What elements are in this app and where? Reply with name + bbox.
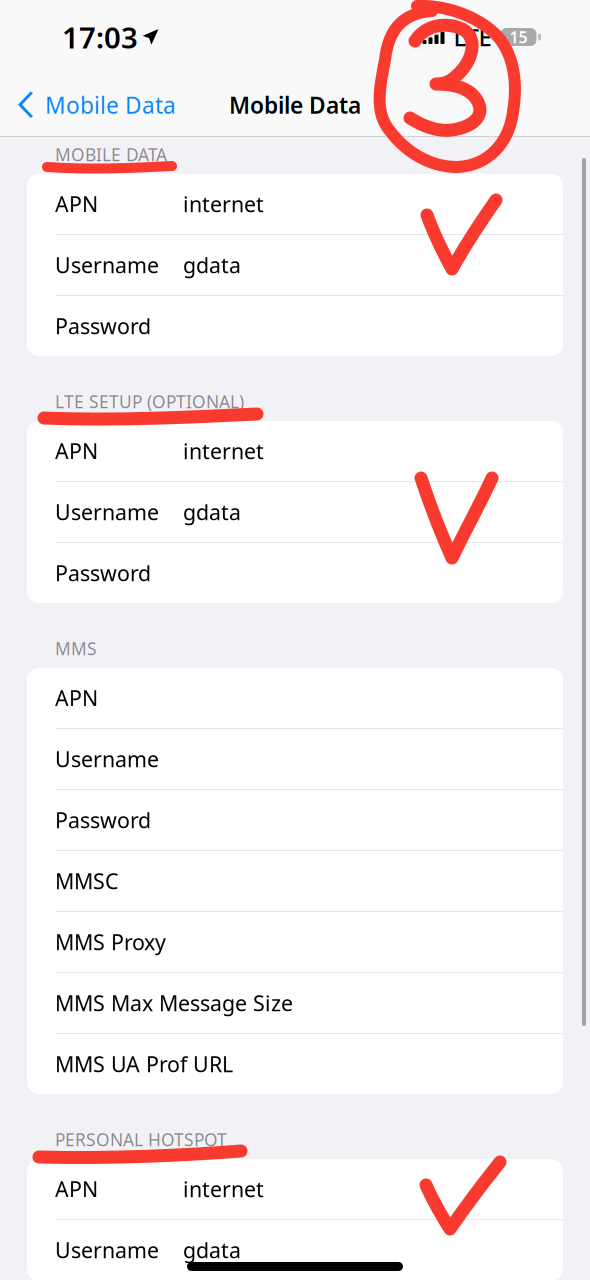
staticText: Password (55, 806, 151, 834)
button[interactable]: MMSC (27, 851, 563, 912)
staticText: LTE SETUP (OPTIONAL) (55, 390, 244, 413)
staticText: Username (55, 251, 159, 279)
staticText: PERSONAL HOTSPOT (55, 1128, 227, 1151)
staticText: Username (55, 498, 159, 526)
button[interactable]: MMS UA Prof URL (27, 1034, 563, 1094)
staticText: Password (55, 559, 151, 587)
staticText: APN (55, 1175, 98, 1203)
button[interactable]: MMS Max Message Size (27, 973, 563, 1034)
staticText: Mobile Data (45, 90, 176, 120)
button[interactable]: MMS Proxy (27, 912, 563, 973)
staticText: internet (183, 190, 264, 218)
staticText: gdata (183, 1236, 241, 1264)
button[interactable]: Password (27, 543, 563, 603)
staticText: LTE (453, 21, 491, 53)
staticText: 17:03 (62, 17, 138, 56)
staticText: MMS UA Prof URL (55, 1050, 233, 1078)
button[interactable]: APN (27, 668, 563, 729)
button[interactable]: Mobile Data (0, 80, 176, 130)
staticText: MMS Proxy (55, 928, 166, 956)
staticText: Username (55, 1236, 159, 1264)
staticText: APN (55, 437, 98, 465)
staticText: APN (55, 190, 98, 218)
staticText: APN (55, 684, 98, 712)
staticText: Username (55, 745, 159, 773)
staticText: MMSC (55, 867, 118, 895)
staticText: gdata (183, 498, 241, 526)
button[interactable]: Username (27, 482, 563, 543)
button[interactable]: Password (27, 790, 563, 851)
staticText: Mobile Data (229, 90, 361, 120)
staticText: internet (183, 1175, 264, 1203)
staticText: Password (55, 312, 151, 340)
button[interactable]: APN (27, 1159, 563, 1220)
staticText: MOBILE DATA (55, 143, 167, 166)
button[interactable]: APN (27, 174, 563, 235)
staticText: 15 (509, 26, 527, 48)
staticText: MMS (55, 637, 97, 660)
button[interactable]: Username (27, 729, 563, 790)
staticText: internet (183, 437, 264, 465)
button[interactable]: Username (27, 235, 563, 296)
staticText: gdata (183, 251, 241, 279)
button[interactable]: APN (27, 421, 563, 482)
button[interactable]: Password (27, 296, 563, 356)
staticText: MMS Max Message Size (55, 989, 293, 1017)
button[interactable]: Username (27, 1220, 563, 1280)
